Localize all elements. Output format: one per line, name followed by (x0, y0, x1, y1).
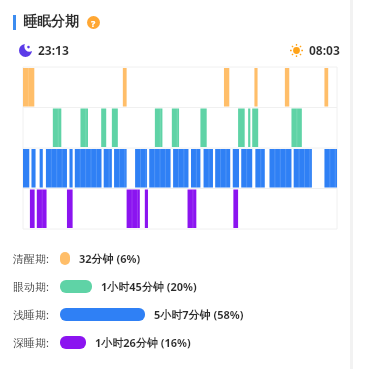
button[interactable]: 深睡期: (13, 335, 347, 350)
staticText: 浅睡期: (13, 307, 49, 322)
button[interactable]: 眼动期: (13, 279, 347, 294)
staticText: 08:03 (309, 42, 340, 58)
button[interactable]: 浅睡期: (13, 307, 347, 322)
staticText: 23:13 (38, 42, 69, 58)
staticText: 清醒期: (13, 251, 49, 266)
staticText: 眼动期: (13, 279, 49, 294)
staticText: ? (91, 17, 96, 29)
button[interactable]: 清醒期: (13, 251, 347, 266)
staticText: 睡眠分期 (23, 13, 79, 31)
button[interactable]: Help (87, 16, 100, 29)
staticText: 32分钟 (6%) (79, 251, 141, 266)
staticText: 深睡期: (13, 335, 49, 350)
staticText: 1小时45分钟 (20%) (101, 279, 197, 294)
staticText: 1小时26分钟 (16%) (95, 335, 191, 350)
button[interactable] (23, 67, 337, 229)
staticText: 5小时7分钟 (58%) (154, 307, 244, 322)
